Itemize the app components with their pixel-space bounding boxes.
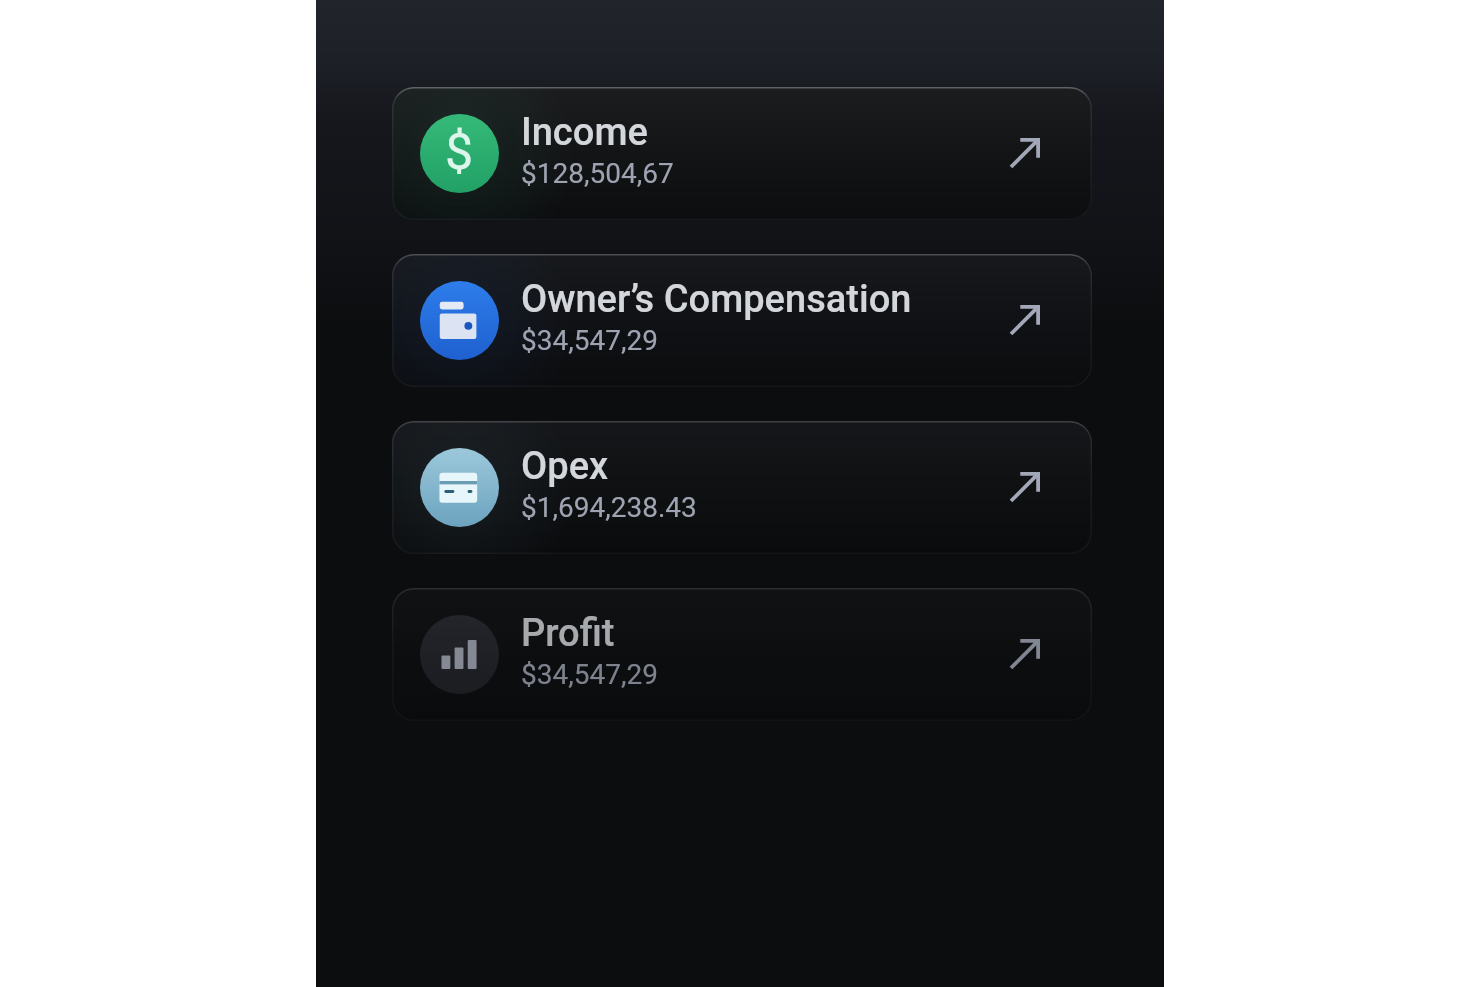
button[interactable]: Open Opex details [1003, 464, 1047, 508]
button[interactable]: Open Profit details [1003, 631, 1047, 675]
button[interactable]: Open Income details [1003, 130, 1047, 174]
staticText: Profit [521, 611, 615, 656]
staticText: Income [521, 110, 648, 155]
staticText: $34,547,29 [521, 324, 658, 357]
staticText: $ [445, 123, 474, 182]
staticText: $34,547,29 [521, 658, 658, 691]
button[interactable]: Open Owner’s Compensation details [1003, 297, 1047, 341]
button[interactable]: Owner’s Compensation [392, 254, 1092, 387]
staticText: Opex [521, 444, 609, 489]
button[interactable]: $ [392, 87, 1092, 220]
staticText: $128,504,67 [521, 157, 674, 190]
staticText: Owner’s Compensation [521, 277, 912, 322]
button[interactable]: Opex [392, 421, 1092, 554]
staticText: $1,694,238.43 [521, 491, 697, 524]
button[interactable]: Profit [392, 588, 1092, 721]
